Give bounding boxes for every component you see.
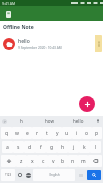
button[interactable]: Shift bbox=[1, 155, 16, 167]
button[interactable]: k bbox=[79, 141, 90, 153]
button[interactable]: s bbox=[13, 141, 24, 153]
button[interactable]: w bbox=[12, 127, 22, 139]
staticText: r bbox=[36, 130, 39, 137]
button[interactable]: how bbox=[35, 116, 64, 126]
staticText: > bbox=[4, 120, 6, 124]
button[interactable]: q bbox=[1, 127, 12, 139]
button[interactable]: h bbox=[57, 141, 68, 153]
button[interactable]: English bbox=[33, 169, 75, 181]
button[interactable]: Add note bbox=[79, 96, 95, 112]
button[interactable]: t bbox=[42, 127, 52, 139]
staticText: w bbox=[15, 130, 19, 137]
button[interactable]: hello bbox=[64, 116, 93, 126]
button[interactable]: g bbox=[46, 141, 57, 153]
button[interactable]: Cursor keys bbox=[75, 169, 86, 181]
staticText: s bbox=[17, 144, 20, 151]
staticText: y bbox=[56, 130, 59, 137]
button[interactable]: Voice input bbox=[93, 116, 103, 126]
button[interactable]: c bbox=[38, 155, 48, 167]
staticText: Offline Note bbox=[3, 24, 34, 31]
button[interactable]: Backspace bbox=[88, 155, 102, 167]
staticText: u bbox=[65, 130, 69, 137]
staticText: o bbox=[85, 130, 89, 137]
staticText: b bbox=[61, 158, 65, 165]
button[interactable]: y bbox=[52, 127, 62, 139]
staticText: z bbox=[20, 158, 23, 165]
staticText: a bbox=[6, 144, 9, 151]
staticText: English bbox=[49, 173, 60, 177]
staticText: k bbox=[83, 144, 86, 151]
button[interactable]: More options bbox=[95, 35, 102, 52]
staticText: f bbox=[40, 144, 42, 151]
staticText: n bbox=[71, 158, 75, 165]
staticText: ?123 bbox=[5, 173, 12, 177]
staticText: g bbox=[50, 144, 54, 151]
button[interactable]: x bbox=[27, 155, 38, 167]
staticText: p bbox=[95, 130, 99, 137]
button[interactable]: Expand suggestions bbox=[2, 119, 7, 124]
button[interactable]: Menu bbox=[3, 9, 13, 19]
staticText: d bbox=[28, 144, 32, 151]
button[interactable]: r bbox=[32, 127, 42, 139]
staticText: q bbox=[5, 130, 9, 137]
staticText: 9:41 AM bbox=[2, 1, 16, 6]
staticText: h bbox=[61, 144, 65, 151]
button[interactable]: Symbols bbox=[1, 169, 15, 181]
staticText: i bbox=[76, 130, 78, 137]
staticText: j bbox=[73, 144, 75, 151]
staticText: e bbox=[26, 130, 29, 137]
staticText: m bbox=[81, 158, 86, 165]
button[interactable]: b bbox=[58, 155, 68, 167]
button[interactable]: a bbox=[2, 141, 13, 153]
button[interactable]: h bbox=[7, 116, 35, 126]
staticText: how bbox=[45, 118, 54, 124]
button[interactable]: p bbox=[92, 127, 102, 139]
button[interactable]: Search bbox=[87, 170, 101, 180]
staticText: h bbox=[20, 118, 23, 124]
staticText: x bbox=[31, 158, 34, 165]
button[interactable]: n bbox=[68, 155, 78, 167]
staticText: hello bbox=[73, 118, 84, 124]
button[interactable]: hello bbox=[1, 35, 102, 52]
button[interactable]: Language bbox=[24, 169, 33, 181]
button[interactable]: m bbox=[78, 155, 88, 167]
staticText: v bbox=[52, 158, 55, 165]
staticText: c bbox=[42, 158, 45, 165]
button[interactable]: u bbox=[62, 127, 72, 139]
button[interactable]: j bbox=[68, 141, 79, 153]
button[interactable]: l bbox=[90, 141, 101, 153]
button[interactable]: d bbox=[24, 141, 35, 153]
button[interactable]: e bbox=[22, 127, 32, 139]
button[interactable]: i bbox=[72, 127, 82, 139]
staticText: l bbox=[95, 144, 97, 151]
staticText: t bbox=[46, 130, 48, 137]
button[interactable]: z bbox=[16, 155, 27, 167]
staticText: hello bbox=[18, 38, 30, 45]
button[interactable]: f bbox=[35, 141, 46, 153]
button[interactable]: o bbox=[82, 127, 92, 139]
staticText: 9 September 2020 : 10:43 AM bbox=[18, 46, 62, 50]
button[interactable]: Emoji bbox=[15, 169, 24, 181]
button[interactable]: v bbox=[48, 155, 58, 167]
